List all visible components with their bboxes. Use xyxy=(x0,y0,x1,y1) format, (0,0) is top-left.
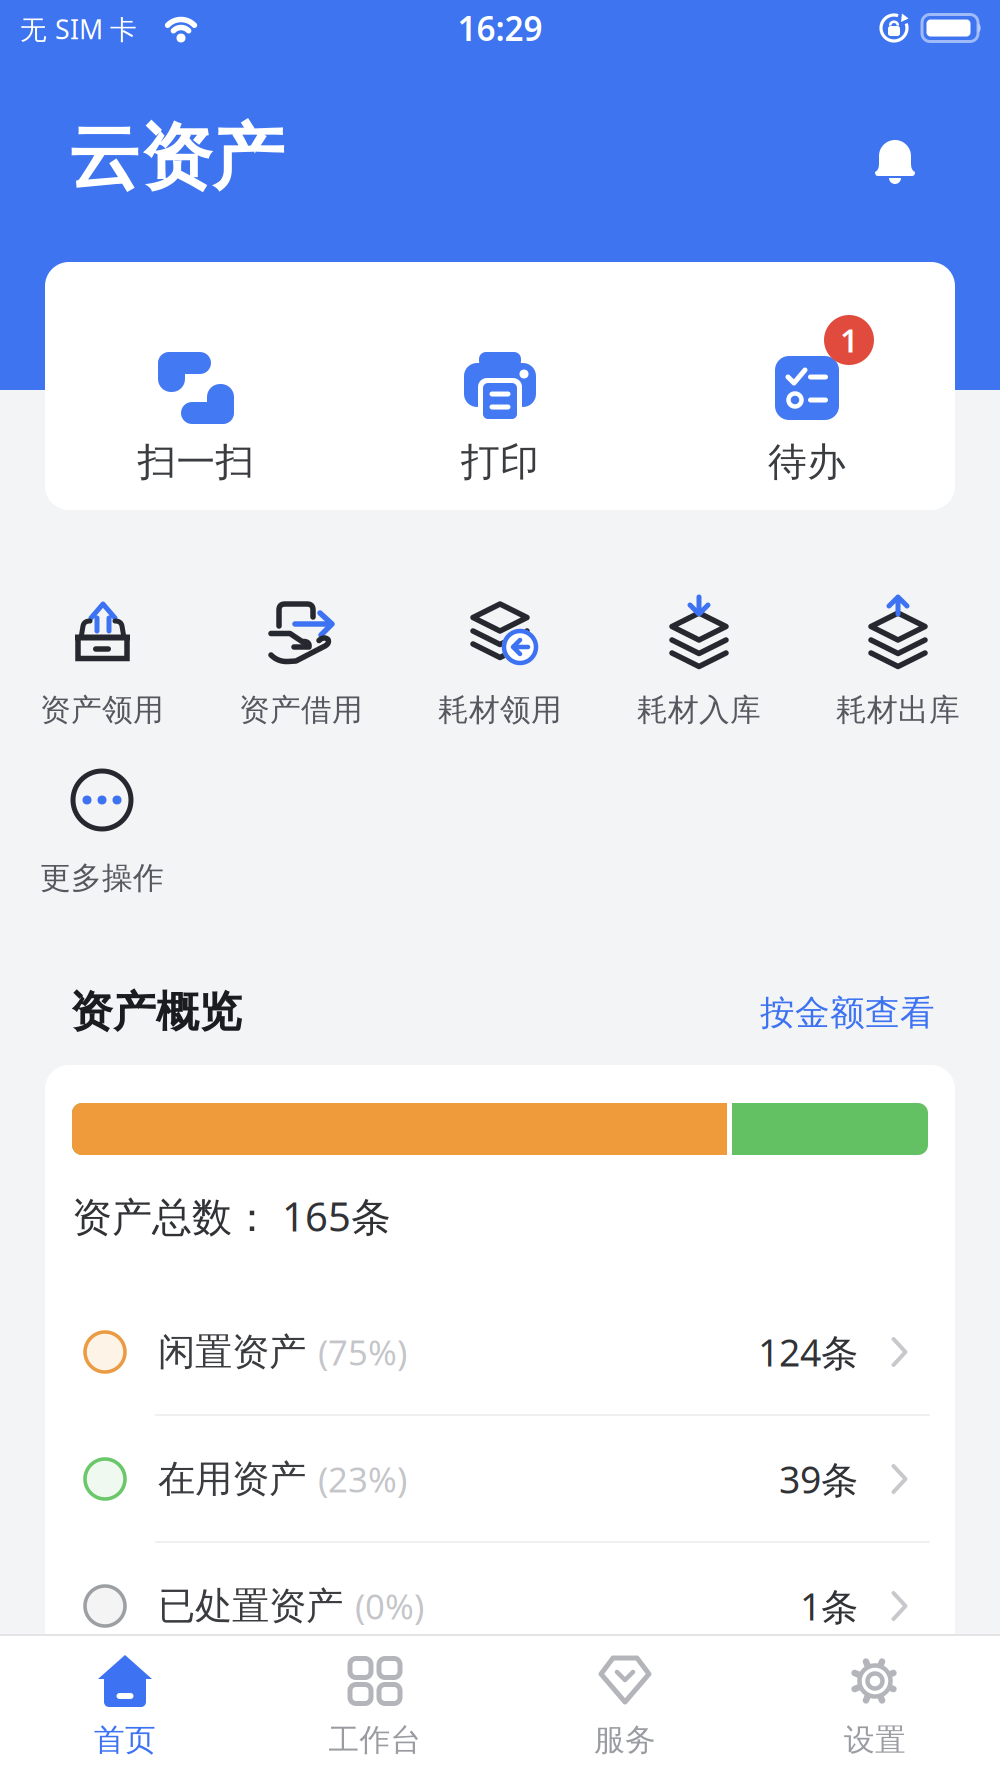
staticText: 16:29 xyxy=(457,6,542,50)
button[interactable]: 闲置资产 xyxy=(45,1307,955,1397)
staticText: 扫一扫 xyxy=(137,438,254,486)
button[interactable]: 在用资产 xyxy=(45,1434,955,1524)
staticText: 首页 xyxy=(94,1721,156,1759)
button[interactable]: 资产借用 xyxy=(203,598,399,734)
staticText: 工作台 xyxy=(328,1721,421,1759)
button[interactable]: 工作台 xyxy=(250,1643,500,1778)
staticText: 耗材领用 xyxy=(438,691,562,729)
staticText: 打印 xyxy=(461,438,539,486)
button[interactable]: 扫一扫 xyxy=(76,350,316,498)
staticText: (23%) xyxy=(318,1456,407,1502)
staticText: 服务 xyxy=(594,1721,656,1759)
staticText: 按金额查看 xyxy=(760,992,935,1034)
staticText: 1 xyxy=(840,319,858,361)
staticText: (0%) xyxy=(355,1583,424,1629)
staticText: 耗材出库 xyxy=(836,691,960,729)
staticText: 更多操作 xyxy=(40,859,164,897)
staticText: 无 SIM 卡 xyxy=(20,11,137,47)
staticText: 1条 xyxy=(800,1581,858,1631)
staticText: 124条 xyxy=(758,1327,858,1377)
staticText: 已处置资产 xyxy=(158,1583,343,1629)
staticText: 资产领用 xyxy=(40,691,164,729)
staticText: (75%) xyxy=(318,1329,407,1375)
staticText: 资产概览 xyxy=(70,986,242,1038)
staticText: 耗材入库 xyxy=(637,691,761,729)
staticText: 资产总数： 165条 xyxy=(72,1189,391,1242)
staticText: 在用资产 xyxy=(158,1456,306,1502)
button[interactable]: 设置 xyxy=(750,1643,1000,1778)
staticText: 云资产 xyxy=(68,114,284,202)
button[interactable]: 首页 xyxy=(0,1643,250,1778)
button[interactable]: 服务 xyxy=(500,1643,750,1778)
button[interactable]: 打印 xyxy=(380,350,620,498)
staticText: 设置 xyxy=(844,1721,906,1759)
staticText: 闲置资产 xyxy=(158,1329,306,1375)
button[interactable]: 已处置资产 xyxy=(45,1561,955,1651)
button[interactable]: 耗材领用 xyxy=(402,598,598,734)
button[interactable]: 通知 xyxy=(871,135,919,185)
button[interactable]: 耗材出库 xyxy=(800,598,996,734)
button[interactable]: 耗材入库 xyxy=(601,598,797,734)
staticText: 资产借用 xyxy=(239,691,363,729)
staticText: 39条 xyxy=(779,1454,858,1504)
button[interactable]: 按金额查看 xyxy=(635,992,935,1034)
button[interactable]: 资产领用 xyxy=(4,598,200,734)
button[interactable]: 更多操作 xyxy=(4,766,200,902)
button[interactable]: 待办 xyxy=(687,350,927,498)
staticText: 待办 xyxy=(768,438,846,486)
